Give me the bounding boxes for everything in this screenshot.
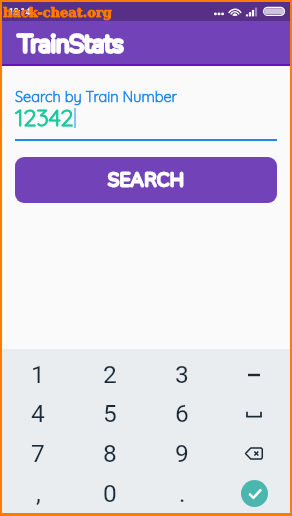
staticText: Search by Train Number bbox=[15, 87, 177, 105]
button[interactable]: SEARCH bbox=[15, 157, 277, 203]
staticText: 6 bbox=[175, 399, 189, 428]
button[interactable]: Dash bbox=[218, 355, 290, 394]
button[interactable]: 3 bbox=[146, 355, 218, 394]
staticText: 8 bbox=[103, 439, 117, 468]
staticText: SEARCH bbox=[108, 168, 185, 193]
button[interactable]: 9 bbox=[146, 433, 218, 473]
staticText: 3 bbox=[175, 360, 189, 389]
button[interactable]: Space bbox=[218, 394, 290, 433]
staticText: 7 bbox=[31, 439, 45, 468]
button[interactable]: 7 bbox=[2, 433, 74, 473]
button[interactable]: Backspace bbox=[218, 433, 290, 473]
staticText: 2 bbox=[103, 360, 117, 389]
button[interactable]: , bbox=[2, 473, 74, 513]
staticText: TrainStats bbox=[18, 27, 124, 60]
staticText: 9 bbox=[175, 439, 189, 468]
staticText: Search by Train Number bbox=[15, 87, 177, 105]
staticText: 4 bbox=[31, 399, 45, 428]
button[interactable]: 5 bbox=[74, 394, 146, 433]
staticText: 5 bbox=[103, 399, 117, 428]
staticText: 12342 bbox=[15, 102, 74, 131]
staticText: 0 bbox=[103, 479, 117, 508]
staticText: 12342 bbox=[15, 102, 74, 131]
staticText: SEARCH bbox=[108, 168, 185, 193]
button[interactable]: . bbox=[146, 473, 218, 513]
button[interactable]: 4 bbox=[2, 394, 74, 433]
button[interactable]: 0 bbox=[74, 473, 146, 513]
button[interactable]: 1 bbox=[2, 355, 74, 394]
staticText: TrainStats bbox=[18, 27, 124, 60]
button[interactable]: Done bbox=[241, 480, 268, 507]
staticText: hack-cheat.org bbox=[3, 5, 112, 20]
button[interactable]: 8 bbox=[74, 433, 146, 473]
button[interactable]: 2 bbox=[74, 355, 146, 394]
staticText: 1 bbox=[31, 360, 45, 389]
staticText: . bbox=[179, 479, 186, 508]
staticText: 18:14 bbox=[9, 7, 31, 17]
staticText: , bbox=[36, 479, 41, 508]
button[interactable]: 6 bbox=[146, 394, 218, 433]
staticText: hack-cheat.org bbox=[3, 5, 112, 20]
